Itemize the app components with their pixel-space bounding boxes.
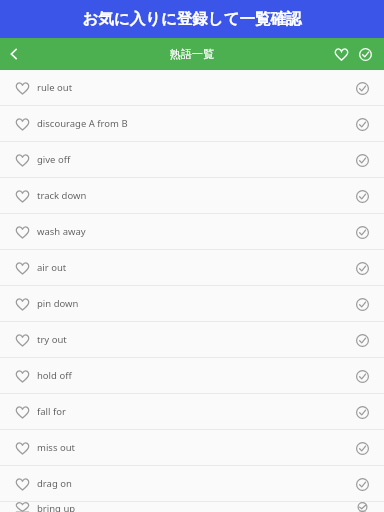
staticText: 熟語一覧 <box>170 47 214 61</box>
staticText: hold off <box>37 369 72 382</box>
button[interactable]: Add to favorites <box>0 466 384 501</box>
button[interactable]: Add to favorites <box>13 502 31 512</box>
button[interactable]: Add to favorites <box>13 439 31 457</box>
button[interactable]: Add to favorites <box>13 187 31 205</box>
button[interactable]: Add to favorites <box>0 286 384 321</box>
button[interactable]: Mark as learned <box>353 439 371 457</box>
button[interactable]: Add to favorites <box>0 214 384 249</box>
button[interactable]: Back <box>5 45 23 63</box>
button[interactable]: Add to favorites <box>13 115 31 133</box>
staticText: discourage A from B <box>37 117 128 130</box>
button[interactable]: Add to favorites <box>0 70 384 105</box>
button[interactable]: Add to favorites <box>13 223 31 241</box>
button[interactable]: Add to favorites <box>0 106 384 141</box>
button[interactable]: Add to favorites <box>0 178 384 213</box>
staticText: give off <box>37 153 71 166</box>
button[interactable]: Add to favorites <box>0 142 384 177</box>
button[interactable]: Add to favorites <box>0 394 384 429</box>
button[interactable]: Mark as learned <box>353 115 371 133</box>
button[interactable]: Mark as learned <box>353 295 371 313</box>
staticText: drag on <box>37 477 72 490</box>
button[interactable]: Mark as learned <box>353 367 371 385</box>
staticText: try out <box>37 333 67 346</box>
staticText: お気に入りに登録して一覧確認 <box>82 9 302 29</box>
staticText: bring up <box>37 502 76 512</box>
button[interactable]: Add to favorites <box>0 358 384 393</box>
staticText: pin down <box>37 297 79 310</box>
button[interactable]: Mark as learned <box>353 502 371 512</box>
button[interactable]: Mark as learned <box>353 151 371 169</box>
button[interactable]: Add to favorites <box>0 250 384 285</box>
button[interactable]: Add to favorites <box>13 331 31 349</box>
button[interactable]: Add to favorites <box>13 295 31 313</box>
staticText: air out <box>37 261 67 274</box>
button[interactable]: Add to favorites <box>13 79 31 97</box>
staticText: track down <box>37 189 87 202</box>
button[interactable]: Mark as learned <box>353 223 371 241</box>
button[interactable]: Add to favorites <box>13 367 31 385</box>
button[interactable]: Add to favorites <box>13 403 31 421</box>
button[interactable]: Mark as learned <box>353 187 371 205</box>
button[interactable]: Mark as learned <box>353 331 371 349</box>
staticText: rule out <box>37 81 73 94</box>
button[interactable]: Add to favorites <box>13 475 31 493</box>
button[interactable]: Mark as learned <box>353 403 371 421</box>
staticText: wash away <box>37 225 86 238</box>
button[interactable]: Favorites <box>330 43 352 65</box>
button[interactable]: Learned list <box>354 43 376 65</box>
staticText: miss out <box>37 441 75 454</box>
button[interactable]: Add to favorites <box>0 502 384 512</box>
button[interactable]: Add to favorites <box>13 151 31 169</box>
button[interactable]: Mark as learned <box>353 259 371 277</box>
staticText: fall for <box>37 405 66 418</box>
button[interactable]: Add to favorites <box>0 430 384 465</box>
button[interactable]: Add to favorites <box>0 322 384 357</box>
button[interactable]: Mark as learned <box>353 475 371 493</box>
button[interactable]: Mark as learned <box>353 79 371 97</box>
button[interactable]: Add to favorites <box>13 259 31 277</box>
